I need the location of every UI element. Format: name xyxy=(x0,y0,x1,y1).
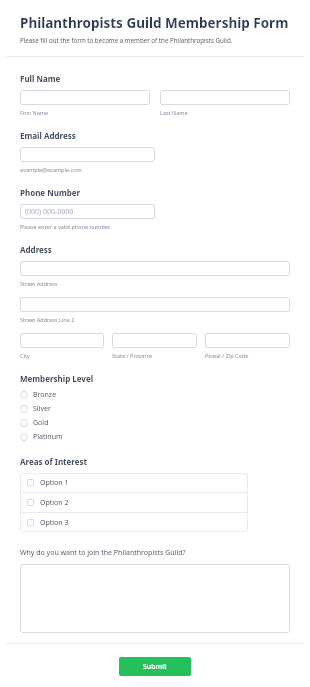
staticText: Street Address xyxy=(20,280,58,287)
staticText: Bronze xyxy=(33,390,57,400)
button[interactable]: Submit xyxy=(119,657,191,676)
button[interactable] xyxy=(112,333,197,348)
staticText: Philanthropists Guild Membership Form xyxy=(20,14,289,32)
staticText: Option 1 xyxy=(40,478,69,488)
button[interactable] xyxy=(20,564,290,633)
staticText: Phone Number xyxy=(20,187,81,198)
button[interactable]: Option 1 xyxy=(20,473,248,492)
staticText: Please enter a valid phone number. xyxy=(20,223,111,230)
button[interactable]: (000) 000-0000 xyxy=(20,204,155,219)
staticText: Last Name xyxy=(160,109,188,116)
staticText: Silver xyxy=(33,404,51,414)
staticText: First Name xyxy=(20,109,49,116)
button[interactable]: Platinum xyxy=(20,430,290,444)
staticText: Please fill out the form to become a mem… xyxy=(20,36,233,44)
staticText: Gold xyxy=(33,418,49,428)
staticText: City xyxy=(20,352,30,359)
staticText: Option 3 xyxy=(40,518,69,528)
button[interactable]: Option 2 xyxy=(20,493,248,512)
staticText: Postal / Zip Code xyxy=(205,352,249,359)
button[interactable] xyxy=(160,90,290,105)
staticText: example@example.com xyxy=(20,166,82,173)
staticText: Street Address Line 2 xyxy=(20,316,75,323)
staticText: Address xyxy=(20,244,52,255)
button[interactable]: Option 3 xyxy=(20,513,248,532)
staticText: Option 2 xyxy=(40,498,69,508)
staticText: Full Name xyxy=(20,73,61,84)
staticText: State / Province xyxy=(112,352,153,359)
staticText: Submit xyxy=(143,662,167,672)
button[interactable] xyxy=(20,297,290,312)
button[interactable] xyxy=(20,261,290,276)
button[interactable]: Silver xyxy=(20,402,290,416)
button[interactable] xyxy=(20,333,104,348)
button[interactable] xyxy=(20,90,150,105)
staticText: Why do you want to join the Philanthropi… xyxy=(20,548,186,558)
staticText: Membership Level xyxy=(20,373,94,384)
button[interactable] xyxy=(20,147,155,162)
staticText: (000) 000-0000 xyxy=(25,207,74,217)
button[interactable]: Gold xyxy=(20,416,290,430)
staticText: Platinum xyxy=(33,432,63,442)
button[interactable] xyxy=(205,333,290,348)
staticText: Email Address xyxy=(20,130,76,141)
staticText: Areas of Interest xyxy=(20,456,88,467)
button[interactable]: Bronze xyxy=(20,388,290,402)
